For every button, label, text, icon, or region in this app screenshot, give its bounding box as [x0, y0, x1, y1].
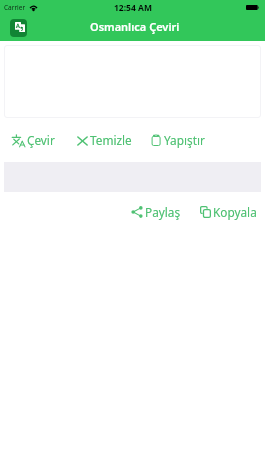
staticText: Kopyala — [213, 204, 257, 220]
button[interactable]: Paylaş — [131, 204, 181, 220]
staticText: Paylaş — [145, 204, 181, 220]
staticText: Osmanlıca Çeviri — [90, 19, 180, 34]
button[interactable]: Çevir — [12, 132, 55, 148]
staticText: Yapıştır — [164, 132, 205, 148]
button[interactable]: Temizle — [77, 132, 132, 148]
staticText: 12:54 AM — [114, 2, 152, 14]
staticText: Temizle — [90, 132, 132, 148]
staticText: Carrier — [4, 3, 26, 12]
button[interactable]: Kopyala — [199, 204, 257, 220]
button[interactable]: Yapıştır — [150, 132, 205, 148]
button[interactable]: Uygulama simgesi — [10, 19, 27, 37]
staticText: Çevir — [27, 132, 55, 148]
